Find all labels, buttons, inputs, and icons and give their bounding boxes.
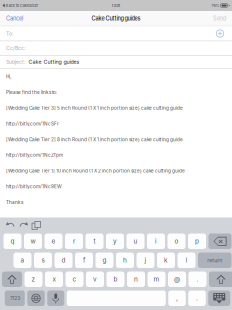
button[interactable]: f [75, 252, 93, 268]
staticText: m [153, 275, 159, 283]
staticText: Subject: [6, 59, 26, 65]
button[interactable]: Delete [208, 233, 231, 249]
button[interactable]: Hide keyboard [208, 290, 230, 306]
button[interactable]: Redo [18, 220, 28, 230]
staticText: To: [6, 30, 14, 37]
staticText: h [123, 256, 127, 264]
staticText: o [174, 237, 178, 245]
button[interactable]: y [106, 233, 124, 249]
button[interactable]: Shift [2, 271, 22, 287]
button[interactable]: Dictate [47, 290, 64, 306]
button[interactable]: Cancel [4, 13, 25, 24]
staticText: return [207, 257, 222, 263]
button[interactable]: a [13, 252, 31, 268]
button[interactable]: p [188, 233, 206, 249]
staticText: k [164, 256, 168, 264]
staticText: . [196, 275, 198, 283]
button[interactable]: j [136, 252, 154, 268]
button[interactable]: q [3, 233, 21, 249]
button[interactable]: Emoji [27, 290, 45, 306]
staticText: [Wedding Cake Tier 2] 8 inch Round (1 X … [6, 137, 183, 142]
button[interactable]: g [95, 252, 113, 268]
staticText: .?123 [9, 295, 20, 301]
staticText: e [51, 237, 55, 245]
staticText: , [176, 294, 178, 302]
staticText: w [30, 237, 35, 245]
staticText: http://bitly.com/1NcSFr [6, 121, 59, 126]
staticText: x [52, 275, 55, 283]
staticText: g [102, 256, 106, 264]
staticText: v [93, 275, 97, 283]
button[interactable]: n [127, 271, 145, 287]
button[interactable]: Send [211, 13, 228, 24]
button[interactable]: v [86, 271, 104, 287]
staticText: f [83, 256, 85, 264]
button[interactable]: c [65, 271, 83, 287]
button[interactable]: s [34, 252, 52, 268]
button[interactable]: i [147, 233, 165, 249]
staticText: Cc/Bcc: [6, 45, 26, 51]
button[interactable]: o [167, 233, 185, 249]
button[interactable]: return [198, 252, 231, 268]
button[interactable]: . [188, 271, 206, 287]
button[interactable] [67, 290, 166, 306]
staticText: s [41, 256, 44, 264]
staticText: u [133, 237, 137, 245]
staticText: r [73, 237, 75, 245]
staticText: . [196, 294, 198, 302]
button[interactable]: t [85, 233, 103, 249]
staticText: 76% [211, 3, 219, 8]
staticText: [Wedding Cake Tier 1] 10 inch Round (1 X… [6, 168, 185, 174]
staticText: 13:01 [111, 3, 120, 8]
staticText: Thanks [6, 199, 23, 205]
button[interactable]: Back to CakeSlicer [2, 3, 38, 8]
staticText: Hi, [6, 74, 11, 79]
staticText: Cake Cutting guides [91, 15, 140, 22]
staticText: @ [174, 275, 180, 283]
staticText: p [195, 237, 199, 245]
button[interactable]: w [24, 233, 42, 249]
staticText: Please find the links to: [6, 89, 57, 95]
staticText: a [20, 256, 24, 264]
button[interactable]: m [147, 271, 165, 287]
staticText: t [93, 237, 95, 245]
staticText: i [155, 237, 157, 245]
button[interactable]: b [106, 271, 124, 287]
button[interactable]: z [24, 271, 42, 287]
staticText: Send [213, 15, 226, 22]
button[interactable]: Undo [5, 220, 15, 230]
staticText: Cake Cutting guides [28, 59, 79, 65]
staticText: q [10, 237, 14, 245]
button[interactable]: d [54, 252, 72, 268]
button[interactable]: r [65, 233, 83, 249]
button[interactable]: Add recipient [214, 27, 226, 39]
button[interactable]: . [188, 290, 206, 306]
staticText: http://bitly.com/1NcZfpm [6, 152, 63, 158]
button[interactable]: , [168, 290, 186, 306]
staticText: Back to CakeSlicer [6, 3, 38, 8]
staticText: d [61, 256, 65, 264]
button[interactable]: h [116, 252, 134, 268]
button[interactable]: e [44, 233, 62, 249]
staticText: z [31, 275, 35, 283]
button[interactable]: Shift [209, 271, 232, 287]
staticText: b [113, 275, 117, 283]
button[interactable]: .?123 [5, 290, 25, 306]
button[interactable]: k [157, 252, 175, 268]
staticText: n [134, 275, 138, 283]
staticText: [Wedding Cake Tier 3] 5 inch Round (1 X … [6, 105, 183, 111]
staticText: Cancel [6, 15, 23, 22]
staticText: l [185, 256, 187, 264]
button[interactable]: Paste [31, 220, 41, 230]
button[interactable]: l [177, 252, 195, 268]
button[interactable]: @ [168, 271, 186, 287]
staticText: c [72, 275, 76, 283]
button[interactable]: u [126, 233, 144, 249]
staticText: j [144, 256, 146, 264]
button[interactable]: x [45, 271, 63, 287]
staticText: y [113, 237, 117, 245]
staticText: http://bitly.com/1Nc9EW [6, 184, 62, 189]
